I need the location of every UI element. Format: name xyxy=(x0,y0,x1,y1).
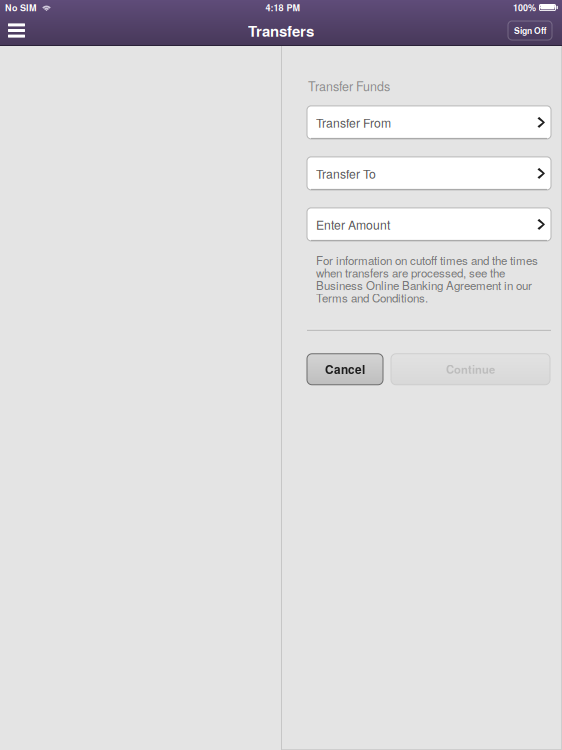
button[interactable]: Sign Off xyxy=(508,21,562,40)
button[interactable]: Enter Amount xyxy=(307,208,551,241)
staticText: Continue xyxy=(446,361,495,377)
staticText: Cancel xyxy=(325,361,365,378)
staticText: No SIM xyxy=(5,1,36,14)
staticText: Transfer Funds xyxy=(308,77,390,95)
staticText: Transfer To xyxy=(316,165,376,182)
button[interactable]: Continue xyxy=(391,354,550,385)
staticText: Transfers xyxy=(248,20,314,41)
staticText: 100% xyxy=(513,1,536,14)
staticText: 4:18 PM xyxy=(265,1,299,14)
button[interactable]: Cancel xyxy=(307,354,383,385)
button[interactable]: Menu xyxy=(0,15,33,46)
staticText: Sign Off xyxy=(514,24,546,37)
staticText: Transfer From xyxy=(316,114,391,131)
staticText: For information on cutoff times and the … xyxy=(316,252,538,306)
button[interactable]: Transfer From xyxy=(307,106,551,139)
staticText: Enter Amount xyxy=(316,216,390,233)
button[interactable]: Transfer To xyxy=(307,157,551,190)
